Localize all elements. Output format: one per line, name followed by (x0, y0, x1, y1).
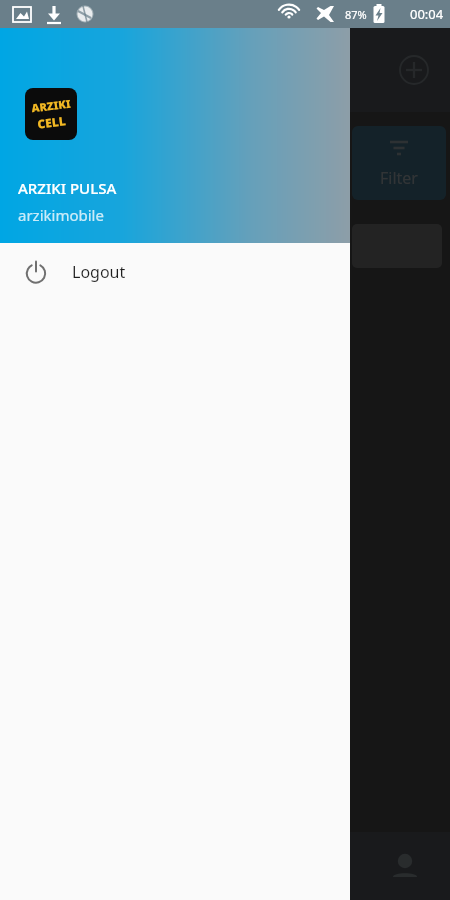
staticText: Filter (380, 167, 418, 189)
staticText: 87% (345, 7, 367, 22)
staticText: arzikimobile (18, 205, 104, 225)
staticText: ARZIKI PULSA (18, 178, 117, 198)
staticText: Logout (72, 261, 126, 283)
button[interactable]: Account (377, 838, 433, 894)
staticText: ARZIKI (30, 96, 72, 115)
staticText: 00:04 (410, 5, 444, 23)
button[interactable]: Add (392, 48, 436, 92)
button[interactable]: Filter (352, 126, 446, 200)
staticText: CELL (36, 112, 67, 132)
button[interactable]: Logout (0, 243, 350, 301)
